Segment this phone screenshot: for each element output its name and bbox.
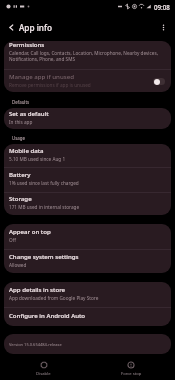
staticText: Appear on top: [9, 227, 51, 235]
staticText: App details in store: [9, 285, 66, 293]
staticText: Storage: [9, 194, 32, 202]
staticText: App info: [19, 22, 52, 33]
staticText: Version 15.0.654484-release: [9, 342, 62, 347]
staticText: Usage: [12, 135, 25, 141]
staticText: Configure in Android Auto: [9, 311, 86, 319]
button[interactable]: Back: [3, 19, 19, 35]
staticText: Battery: [9, 170, 31, 178]
staticText: Permissions: [9, 41, 45, 48]
button[interactable]: Force stop: [87, 354, 175, 380]
staticText: Off: [9, 237, 16, 243]
button[interactable]: Configure in Android Auto: [4, 308, 171, 326]
staticText: Mobile data: [9, 146, 44, 154]
button[interactable]: App details in store: [4, 282, 171, 307]
staticText: Change system settings: [9, 252, 79, 260]
button[interactable]: Battery: [4, 168, 171, 192]
button[interactable]: Permissions: [4, 41, 171, 69]
button[interactable]: Manage app if unused toggle: [153, 78, 165, 85]
staticText: Calendar, Call logs, Contacts, Location,…: [9, 50, 165, 62]
staticText: Force stop: [121, 371, 142, 377]
staticText: 1% used since last fully charged: [9, 180, 79, 186]
staticText: Defaults: [12, 99, 30, 105]
staticText: 09:08: [154, 3, 170, 11]
staticText: Allowed: [9, 262, 27, 268]
button[interactable]: Change system settings: [4, 250, 171, 273]
staticText: 5.10 MB used since Aug 1: [9, 156, 66, 162]
staticText: Disable: [36, 371, 51, 377]
staticText: Manage app if unused: [9, 72, 74, 80]
staticText: In this app: [9, 119, 33, 125]
button[interactable]: Set as default: [4, 108, 171, 129]
staticText: 171 MB used in internal storage: [9, 204, 80, 210]
button[interactable]: Manage app if unused: [4, 70, 171, 92]
button[interactable]: More options: [154, 18, 172, 36]
button[interactable]: Appear on top: [4, 224, 171, 249]
button[interactable]: Storage: [4, 193, 171, 215]
staticText: App downloaded from Google Play Store: [9, 295, 99, 301]
button[interactable]: Disable: [0, 354, 87, 380]
staticText: Remove permissions if app is unused: [9, 82, 91, 88]
staticText: Set as default: [9, 109, 49, 117]
button[interactable]: Mobile data: [4, 144, 171, 167]
